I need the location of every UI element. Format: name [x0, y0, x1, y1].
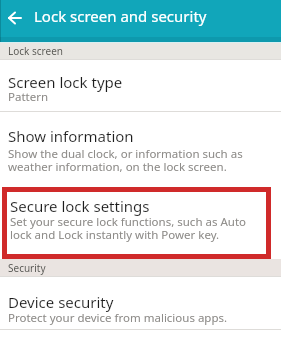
staticText: Show the dual clock, or information such… [8, 146, 243, 174]
staticText: Secure lock settings [10, 196, 150, 216]
button[interactable]: Secure lock settings [0, 182, 281, 259]
button[interactable] [0, 0, 30, 32]
staticText: Security [8, 261, 46, 275]
staticText: Protect your device from malicious apps. [8, 310, 228, 326]
button[interactable]: Device security [0, 277, 281, 329]
staticText: Show information [8, 126, 134, 146]
staticText: Device security [8, 292, 114, 312]
staticText: Screen lock type [8, 72, 123, 92]
button[interactable]: Screen lock type [0, 60, 281, 111]
staticText: Lock screen and security [34, 6, 207, 26]
button[interactable]: Show information [0, 112, 281, 182]
staticText: Pattern [8, 89, 49, 105]
staticText: Lock screen [8, 44, 64, 58]
staticText: Set your secure lock functions, such as … [10, 214, 247, 242]
